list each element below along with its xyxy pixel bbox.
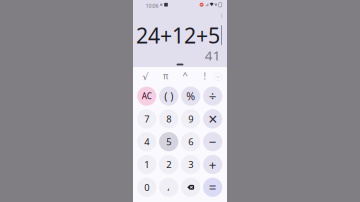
- staticText: 1: [144, 158, 149, 171]
- staticText: 10:06: [145, 2, 158, 9]
- staticText: ^: [182, 68, 187, 81]
- button[interactable]: ,: [159, 178, 178, 197]
- button[interactable]: 5: [159, 132, 178, 151]
- staticText: AC: [142, 91, 152, 101]
- staticText: +: [209, 156, 217, 173]
- button[interactable]: ×: [203, 109, 222, 128]
- staticText: π: [163, 71, 168, 81]
- staticText: −: [209, 133, 217, 150]
- button[interactable]: +: [203, 155, 222, 174]
- staticText: =: [209, 178, 217, 196]
- button[interactable]: 0: [137, 178, 156, 197]
- button[interactable]: 8: [159, 109, 178, 128]
- staticText: 3: [188, 158, 193, 171]
- staticText: 41: [205, 46, 221, 64]
- button[interactable]: !: [197, 68, 212, 84]
- staticText: ( ): [164, 89, 173, 103]
- staticText: ÷: [209, 87, 217, 105]
- button[interactable]: π: [158, 68, 173, 84]
- button[interactable]: Delete: [181, 178, 200, 197]
- button[interactable]: 1: [137, 155, 156, 174]
- staticText: 9: [188, 113, 193, 125]
- button[interactable]: 3: [181, 155, 200, 174]
- staticText: 2: [166, 158, 171, 171]
- staticText: 8: [166, 113, 171, 125]
- staticText: ,: [167, 180, 170, 192]
- staticText: 24+12+5: [136, 21, 220, 49]
- button[interactable]: √: [138, 69, 153, 85]
- staticText: 5: [166, 135, 171, 148]
- staticText: √: [142, 71, 148, 82]
- button[interactable]: 4: [137, 132, 156, 151]
- button[interactable]: 2: [159, 155, 178, 174]
- button[interactable]: ^: [177, 67, 192, 83]
- button[interactable]: 7: [137, 109, 156, 128]
- button[interactable]: More functions: [211, 69, 226, 85]
- staticText: 7: [144, 113, 149, 125]
- staticText: ×: [208, 108, 217, 129]
- button[interactable]: =: [203, 178, 222, 197]
- button[interactable]: ÷: [203, 86, 222, 106]
- staticText: 4: [144, 135, 149, 148]
- button[interactable]: 6: [181, 132, 200, 151]
- staticText: 0: [144, 181, 149, 193]
- button[interactable]: AC: [137, 86, 156, 106]
- staticText: 6: [188, 135, 193, 148]
- staticText: !: [204, 71, 206, 82]
- button[interactable]: 9: [181, 109, 200, 128]
- button[interactable]: −: [203, 132, 222, 151]
- button[interactable]: ( ): [159, 86, 178, 106]
- staticText: %: [186, 89, 195, 103]
- button[interactable]: %: [181, 86, 200, 106]
